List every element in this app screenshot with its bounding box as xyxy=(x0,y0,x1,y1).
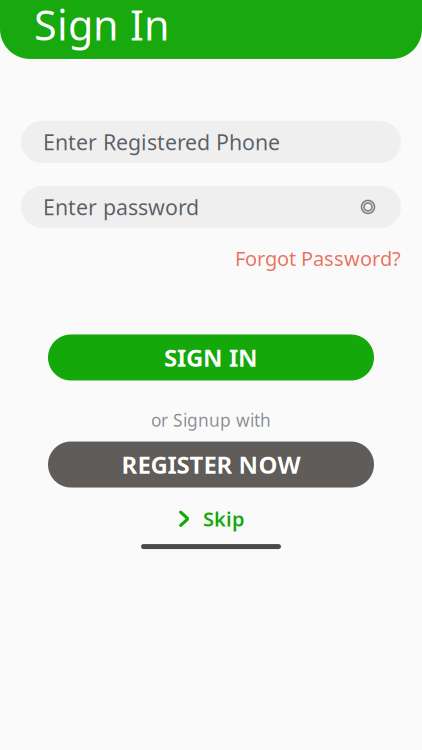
staticText: Enter password xyxy=(43,193,199,221)
button[interactable]: Enter password xyxy=(21,186,401,228)
staticText: Forgot Password? xyxy=(235,245,401,271)
button[interactable]: Skip xyxy=(167,501,255,536)
staticText: or Signup with xyxy=(151,408,271,431)
button[interactable]: SIGN IN xyxy=(48,334,374,380)
staticText: Sign In xyxy=(34,0,170,52)
button[interactable]: Enter Registered Phone xyxy=(21,121,401,163)
staticText: SIGN IN xyxy=(164,342,258,373)
staticText: Skip xyxy=(203,505,245,532)
button[interactable]: Forgot Password? xyxy=(235,242,401,274)
staticText: Enter Registered Phone xyxy=(43,128,280,156)
staticText: REGISTER NOW xyxy=(121,449,300,480)
button[interactable]: REGISTER NOW xyxy=(48,441,374,487)
